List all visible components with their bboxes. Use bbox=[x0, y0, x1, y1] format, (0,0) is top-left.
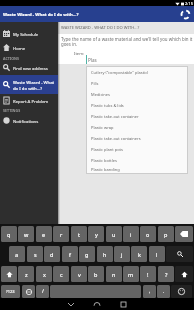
staticText: Plastic plant pots bbox=[91, 147, 123, 152]
staticText: Type the name of a waste material and we… bbox=[61, 36, 194, 47]
button[interactable]: a bbox=[9, 246, 25, 262]
button[interactable]: y bbox=[88, 226, 104, 242]
staticText: k bbox=[138, 251, 141, 258]
button[interactable]: g bbox=[79, 246, 95, 262]
staticText: WASTE WIZARD - WHAT DO I DO WITH...? bbox=[61, 25, 140, 31]
button[interactable]: Plastic take-out container bbox=[87, 111, 187, 122]
button[interactable]: ? bbox=[158, 266, 174, 282]
button[interactable]: i bbox=[123, 226, 139, 242]
staticText: u bbox=[112, 231, 116, 238]
button[interactable]: w bbox=[18, 226, 34, 242]
button[interactable]: Waste Wizard bbox=[179, 8, 192, 21]
staticText: Plastic take-out containers bbox=[91, 136, 141, 141]
button[interactable]: . bbox=[157, 285, 170, 298]
button[interactable]: Home bbox=[0, 41, 58, 54]
staticText: g bbox=[85, 251, 89, 258]
staticText: ACTIONS bbox=[3, 56, 19, 61]
button[interactable]: Enter bbox=[175, 266, 193, 282]
staticText: a bbox=[15, 251, 19, 258]
button[interactable]: Search bbox=[166, 246, 193, 262]
staticText: do I do with...? bbox=[13, 85, 42, 91]
button[interactable]: Plastic wrap bbox=[87, 122, 187, 133]
staticText: c bbox=[60, 271, 63, 278]
button[interactable]: / bbox=[36, 285, 49, 298]
button[interactable]: b bbox=[88, 266, 104, 282]
staticText: Report A Problem bbox=[13, 98, 49, 104]
button[interactable]: Report A Problem bbox=[0, 94, 58, 107]
staticText: SETTINGS bbox=[3, 108, 21, 113]
staticText: Plastic bottles bbox=[91, 158, 118, 163]
button[interactable]: h bbox=[97, 246, 113, 262]
button[interactable]: , bbox=[143, 285, 156, 298]
staticText: Pills bbox=[91, 81, 99, 86]
button[interactable]: x bbox=[36, 266, 52, 282]
button[interactable]: p bbox=[158, 226, 174, 242]
button[interactable]: Shift bbox=[1, 266, 17, 282]
button[interactable]: Plas bbox=[86, 55, 190, 64]
staticText: Plastic banding bbox=[91, 167, 120, 172]
button[interactable]: Pills bbox=[87, 78, 187, 89]
button[interactable]: ?123 bbox=[1, 285, 20, 298]
staticText: l bbox=[156, 251, 158, 258]
button[interactable]: r bbox=[53, 226, 69, 242]
staticText: n bbox=[112, 271, 116, 278]
button[interactable]: l bbox=[149, 246, 165, 262]
button[interactable]: Find new address bbox=[0, 61, 58, 74]
button[interactable]: Recents bbox=[110, 298, 136, 310]
button[interactable]: d bbox=[44, 246, 60, 262]
button[interactable]: Plastic banding bbox=[87, 166, 187, 173]
button[interactable] bbox=[0, 75, 58, 94]
button[interactable]: n bbox=[106, 266, 122, 282]
staticText: i bbox=[130, 231, 132, 238]
button[interactable]: Notifications bbox=[0, 114, 58, 127]
button[interactable]: Language bbox=[22, 285, 35, 298]
staticText: o bbox=[146, 231, 150, 238]
button[interactable]: Home bbox=[84, 298, 110, 310]
button[interactable]: Plastic take-out containers bbox=[87, 133, 187, 144]
staticText: v bbox=[78, 271, 81, 278]
staticText: / bbox=[42, 288, 44, 295]
button[interactable]: e bbox=[36, 226, 52, 242]
button[interactable]: c bbox=[53, 266, 69, 282]
button[interactable]: f bbox=[62, 246, 78, 262]
button[interactable]: Plastic bottles bbox=[87, 155, 187, 166]
button[interactable]: t bbox=[71, 226, 87, 242]
button[interactable]: Waste Wizard - What bbox=[0, 75, 58, 94]
button[interactable]: u bbox=[106, 226, 122, 242]
button[interactable]: s bbox=[27, 246, 43, 262]
staticText: e bbox=[42, 231, 46, 238]
button[interactable]: ! bbox=[140, 266, 156, 282]
button[interactable]: q bbox=[1, 226, 17, 242]
staticText: w bbox=[24, 231, 29, 238]
staticText: h bbox=[103, 251, 107, 258]
button[interactable]: o bbox=[140, 226, 156, 242]
button[interactable]: My Schedule bbox=[0, 27, 58, 40]
staticText: m bbox=[128, 271, 134, 278]
button[interactable]: z bbox=[18, 266, 34, 282]
button[interactable]: Back bbox=[58, 298, 84, 310]
staticText: j bbox=[121, 251, 123, 258]
button[interactable]: j bbox=[114, 246, 130, 262]
button[interactable]: m bbox=[123, 266, 139, 282]
button[interactable]: k bbox=[131, 246, 147, 262]
staticText: Plastic wrap bbox=[91, 125, 114, 130]
button[interactable]: Backspace bbox=[175, 226, 193, 242]
staticText: Plas bbox=[88, 57, 97, 63]
staticText: r bbox=[60, 231, 63, 238]
button[interactable]: Plastic plant pots bbox=[87, 144, 187, 155]
button[interactable]: Plastic tubs & lids bbox=[87, 100, 187, 111]
button[interactable]: Emoji bbox=[171, 285, 192, 298]
staticText: Notifications bbox=[13, 118, 39, 124]
staticText: Plastic tubs & lids bbox=[91, 103, 124, 108]
staticText: q bbox=[7, 231, 11, 238]
staticText: z bbox=[25, 271, 28, 278]
staticText: y bbox=[95, 231, 98, 238]
staticText: b bbox=[94, 271, 98, 278]
button[interactable]: Medicines bbox=[87, 89, 187, 100]
button[interactable]: v bbox=[71, 266, 87, 282]
staticText: Plastic take-out container bbox=[91, 114, 139, 119]
staticText: Item: bbox=[74, 51, 85, 57]
staticText: ?123 bbox=[6, 289, 15, 294]
button[interactable]: Cutlery ("compostable" plastic) bbox=[87, 67, 187, 78]
